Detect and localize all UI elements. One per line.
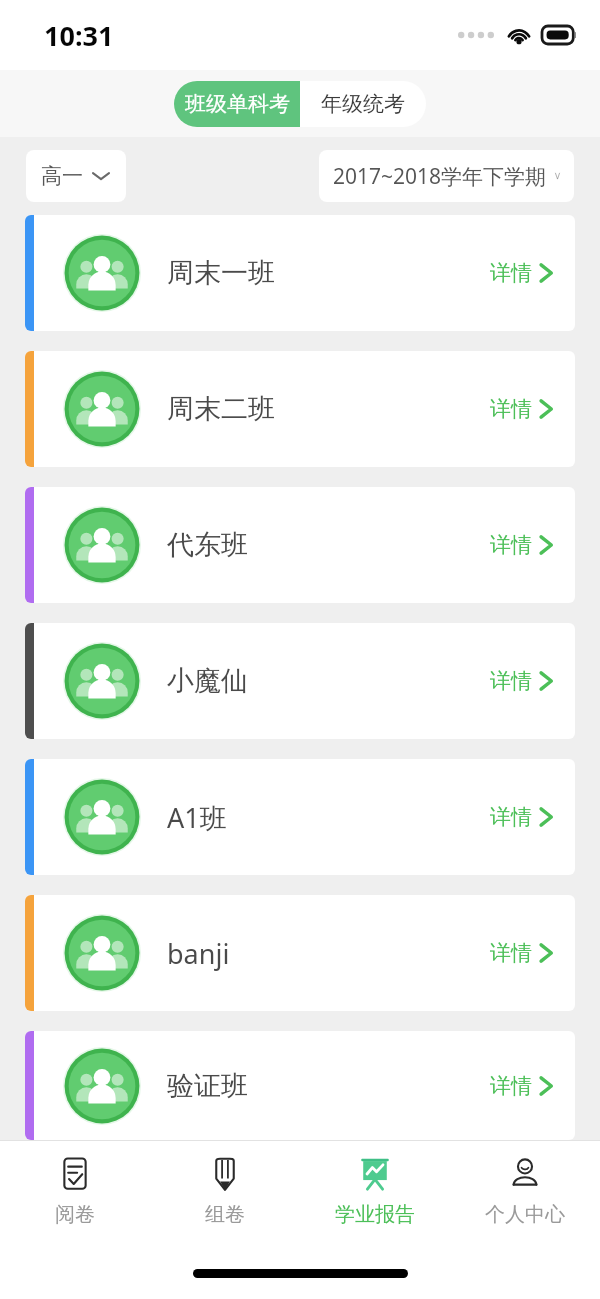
- staticText: 详情: [490, 940, 532, 966]
- staticText: 2017~2018学年下学期: [333, 162, 547, 191]
- staticText: 班级单科考: [185, 91, 290, 117]
- button[interactable]: 个人中心: [450, 1141, 600, 1241]
- staticText: A1班: [167, 799, 227, 836]
- staticText: banji: [167, 935, 230, 972]
- button[interactable]: 高一: [26, 150, 126, 202]
- staticText: 详情: [490, 532, 532, 558]
- staticText: 阅卷: [55, 1202, 95, 1227]
- staticText: 周末一班: [167, 256, 275, 290]
- staticText: 详情: [490, 260, 532, 286]
- button[interactable]: 小魔仙: [25, 623, 575, 739]
- button[interactable]: 周末二班: [25, 351, 575, 467]
- staticText: 验证班: [167, 1069, 248, 1103]
- staticText: 组卷: [205, 1202, 245, 1227]
- staticText: 详情: [490, 668, 532, 694]
- button[interactable]: A1班: [25, 759, 575, 875]
- staticText: 详情: [490, 1073, 532, 1099]
- button[interactable]: 学业报告: [300, 1141, 450, 1241]
- button[interactable]: 组卷: [150, 1141, 300, 1241]
- button[interactable]: 阅卷: [0, 1141, 150, 1241]
- staticText: 10:31: [44, 17, 114, 54]
- staticText: 学业报告: [335, 1202, 415, 1227]
- staticText: 周末二班: [167, 392, 275, 426]
- button[interactable]: 验证班: [25, 1031, 575, 1140]
- button[interactable]: 代东班: [25, 487, 575, 603]
- button[interactable]: 班级单科考: [174, 81, 300, 127]
- staticText: 详情: [490, 804, 532, 830]
- staticText: 代东班: [167, 528, 248, 562]
- staticText: 小魔仙: [167, 664, 248, 698]
- button[interactable]: 2017~2018学年下学期: [319, 150, 574, 202]
- staticText: 个人中心: [485, 1202, 565, 1227]
- staticText: 年级统考: [321, 91, 405, 117]
- button[interactable]: 年级统考: [300, 81, 426, 127]
- staticText: 详情: [490, 396, 532, 422]
- staticText: 高一: [41, 163, 83, 189]
- button[interactable]: 周末一班: [25, 215, 575, 331]
- button[interactable]: banji: [25, 895, 575, 1011]
